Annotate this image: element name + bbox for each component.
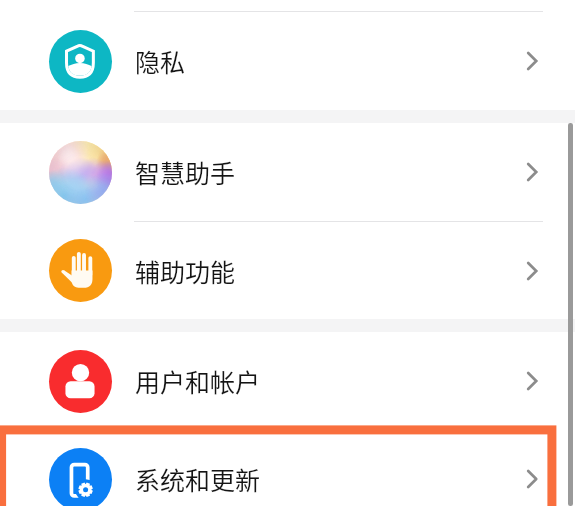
staticText: 智慧助手 bbox=[135, 154, 236, 190]
other: 辅助功能 bbox=[49, 239, 112, 302]
other: 系统和更新 bbox=[49, 448, 112, 506]
button[interactable]: 隐私 bbox=[0, 12, 575, 110]
staticText: 用户和帐户 bbox=[135, 363, 261, 399]
staticText: 辅助功能 bbox=[135, 253, 236, 289]
button[interactable]: 辅助功能 bbox=[0, 222, 575, 319]
staticText: 隐私 bbox=[135, 43, 186, 79]
other: 智慧助手 bbox=[49, 141, 112, 204]
button[interactable]: 系统和更新 bbox=[0, 430, 575, 506]
other: 隐私 bbox=[49, 30, 112, 93]
button[interactable]: 智慧助手 bbox=[0, 123, 575, 222]
staticText: 系统和更新 bbox=[135, 461, 261, 497]
button[interactable]: 用户和帐户 bbox=[0, 332, 575, 430]
other: 用户和帐户 bbox=[49, 350, 112, 413]
